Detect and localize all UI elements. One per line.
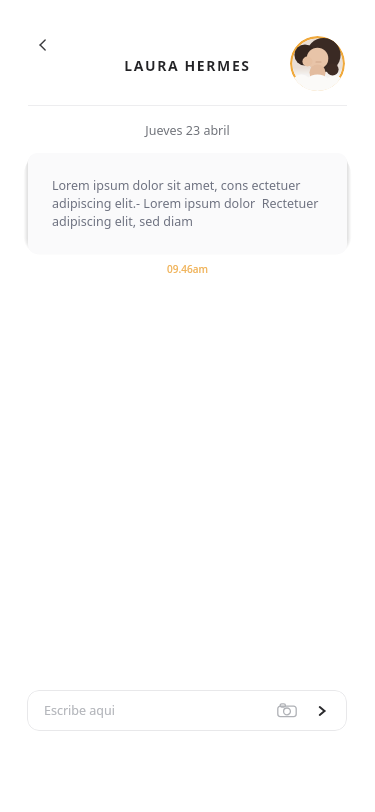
staticText: Jueves 23 abril [0,122,375,139]
button[interactable]: Escribe aqui [27,690,347,731]
staticText: LAURA HERMES [124,56,251,75]
staticText: 09.46am [0,262,375,276]
button[interactable]: Profile photo [290,36,345,91]
button[interactable]: Camera [274,698,300,724]
button[interactable]: Lorem ipsum dolor sit amet, cons ectetue… [28,153,347,254]
staticText: Escribe aqui [44,702,274,719]
button[interactable]: Send [310,699,334,723]
button[interactable]: Back [26,28,60,62]
staticText: Lorem ipsum dolor sit amet, cons ectetue… [52,177,323,230]
